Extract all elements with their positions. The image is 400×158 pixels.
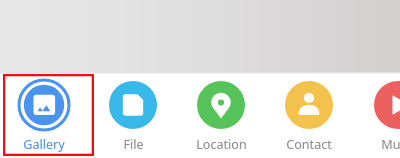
staticText: Contact (286, 136, 332, 153)
staticText: File (123, 136, 144, 153)
button[interactable]: Contact (265, 74, 353, 158)
button[interactable]: Location (177, 74, 265, 158)
button[interactable]: File (89, 74, 177, 158)
staticText: Gallery (23, 136, 65, 153)
staticText: Music (381, 136, 400, 153)
staticText: Location (196, 136, 247, 153)
button[interactable]: Music (354, 74, 400, 158)
button[interactable]: Gallery (0, 74, 88, 158)
